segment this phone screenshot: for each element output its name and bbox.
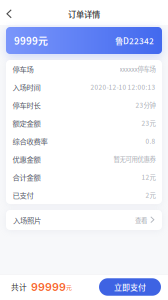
staticText: 停车时长	[12, 100, 40, 110]
staticText: 优惠金额	[12, 154, 40, 164]
staticText: 12元	[141, 172, 155, 182]
staticText: 订单详情	[68, 8, 100, 20]
staticText: 停车场	[12, 64, 33, 74]
staticText: 23分钟	[135, 100, 155, 110]
staticText: 2元	[145, 190, 155, 200]
staticText: 共计	[11, 281, 27, 293]
staticText: 99999	[31, 280, 66, 293]
staticText: 鲁D22342	[115, 34, 154, 47]
button[interactable]: 立即支付	[99, 278, 161, 296]
staticText: 元	[66, 283, 72, 291]
button[interactable]: 入场照片	[6, 210, 162, 230]
staticText: 合计金额	[12, 172, 40, 182]
staticText: 已支付	[12, 190, 33, 200]
staticText: 23元	[141, 118, 155, 128]
button[interactable]: Back	[0, 3, 19, 25]
staticText: 立即支付	[114, 281, 146, 293]
staticText: 综合收费率	[12, 136, 47, 146]
staticText: 额定金额	[12, 118, 40, 128]
staticText: 入场照片	[13, 215, 41, 225]
staticText: 暂无可用优惠券	[113, 154, 155, 164]
staticText: 2020-12-10 12:00:13	[90, 82, 155, 92]
staticText: 查看	[135, 215, 147, 225]
staticText: 9999元	[14, 33, 48, 48]
staticText: 入场时间	[12, 82, 40, 92]
staticText: 0.8	[145, 136, 155, 146]
staticText: xxxxxx停车场	[119, 64, 155, 74]
